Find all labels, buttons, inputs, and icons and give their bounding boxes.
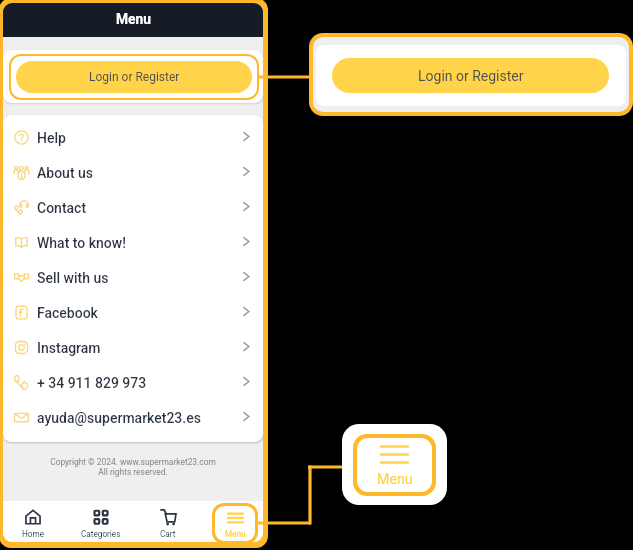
staticText: Login or Register <box>418 68 524 84</box>
staticText: + 34 911 829 973 <box>37 375 147 391</box>
staticText: ayuda@supermarket23.es <box>37 410 201 426</box>
button[interactable]: Categories <box>78 503 124 542</box>
staticText: Contact <box>37 200 87 216</box>
button[interactable]: + 34 911 829 973 <box>3 365 263 400</box>
staticText: Help <box>37 130 66 146</box>
button[interactable]: Home <box>10 503 56 542</box>
staticText: Facebook <box>37 305 98 321</box>
staticText: Menu <box>116 11 151 27</box>
staticText: About us <box>37 165 94 181</box>
button[interactable]: Instagram <box>3 330 263 365</box>
button[interactable]: About us <box>3 155 263 190</box>
staticText: Copyright © 2024. www.supermarket23.com <box>50 457 216 467</box>
staticText: Instagram <box>37 340 101 356</box>
staticText: Menu <box>225 529 246 539</box>
staticText: Login or Register <box>89 70 180 84</box>
button[interactable]: Help <box>3 120 263 155</box>
staticText: Cart <box>160 529 176 539</box>
button[interactable]: Login or Register <box>332 58 609 93</box>
button[interactable]: Menu <box>357 438 432 492</box>
button[interactable]: ayuda@supermarket23.es <box>3 400 263 435</box>
button[interactable]: What to know! <box>3 225 263 260</box>
staticText: Categories <box>81 529 121 539</box>
staticText: Menu <box>377 471 413 488</box>
button[interactable]: Menu <box>215 506 255 541</box>
staticText: What to know! <box>37 235 126 251</box>
button[interactable]: Login or Register <box>16 61 252 93</box>
button[interactable]: Cart <box>145 503 191 542</box>
staticText: Home <box>22 529 45 539</box>
button[interactable]: Sell with us <box>3 260 263 295</box>
button[interactable]: Facebook <box>3 295 263 330</box>
staticText: Sell with us <box>37 270 109 286</box>
staticText: All rights reserved. <box>98 467 168 477</box>
button[interactable]: Contact <box>3 190 263 225</box>
